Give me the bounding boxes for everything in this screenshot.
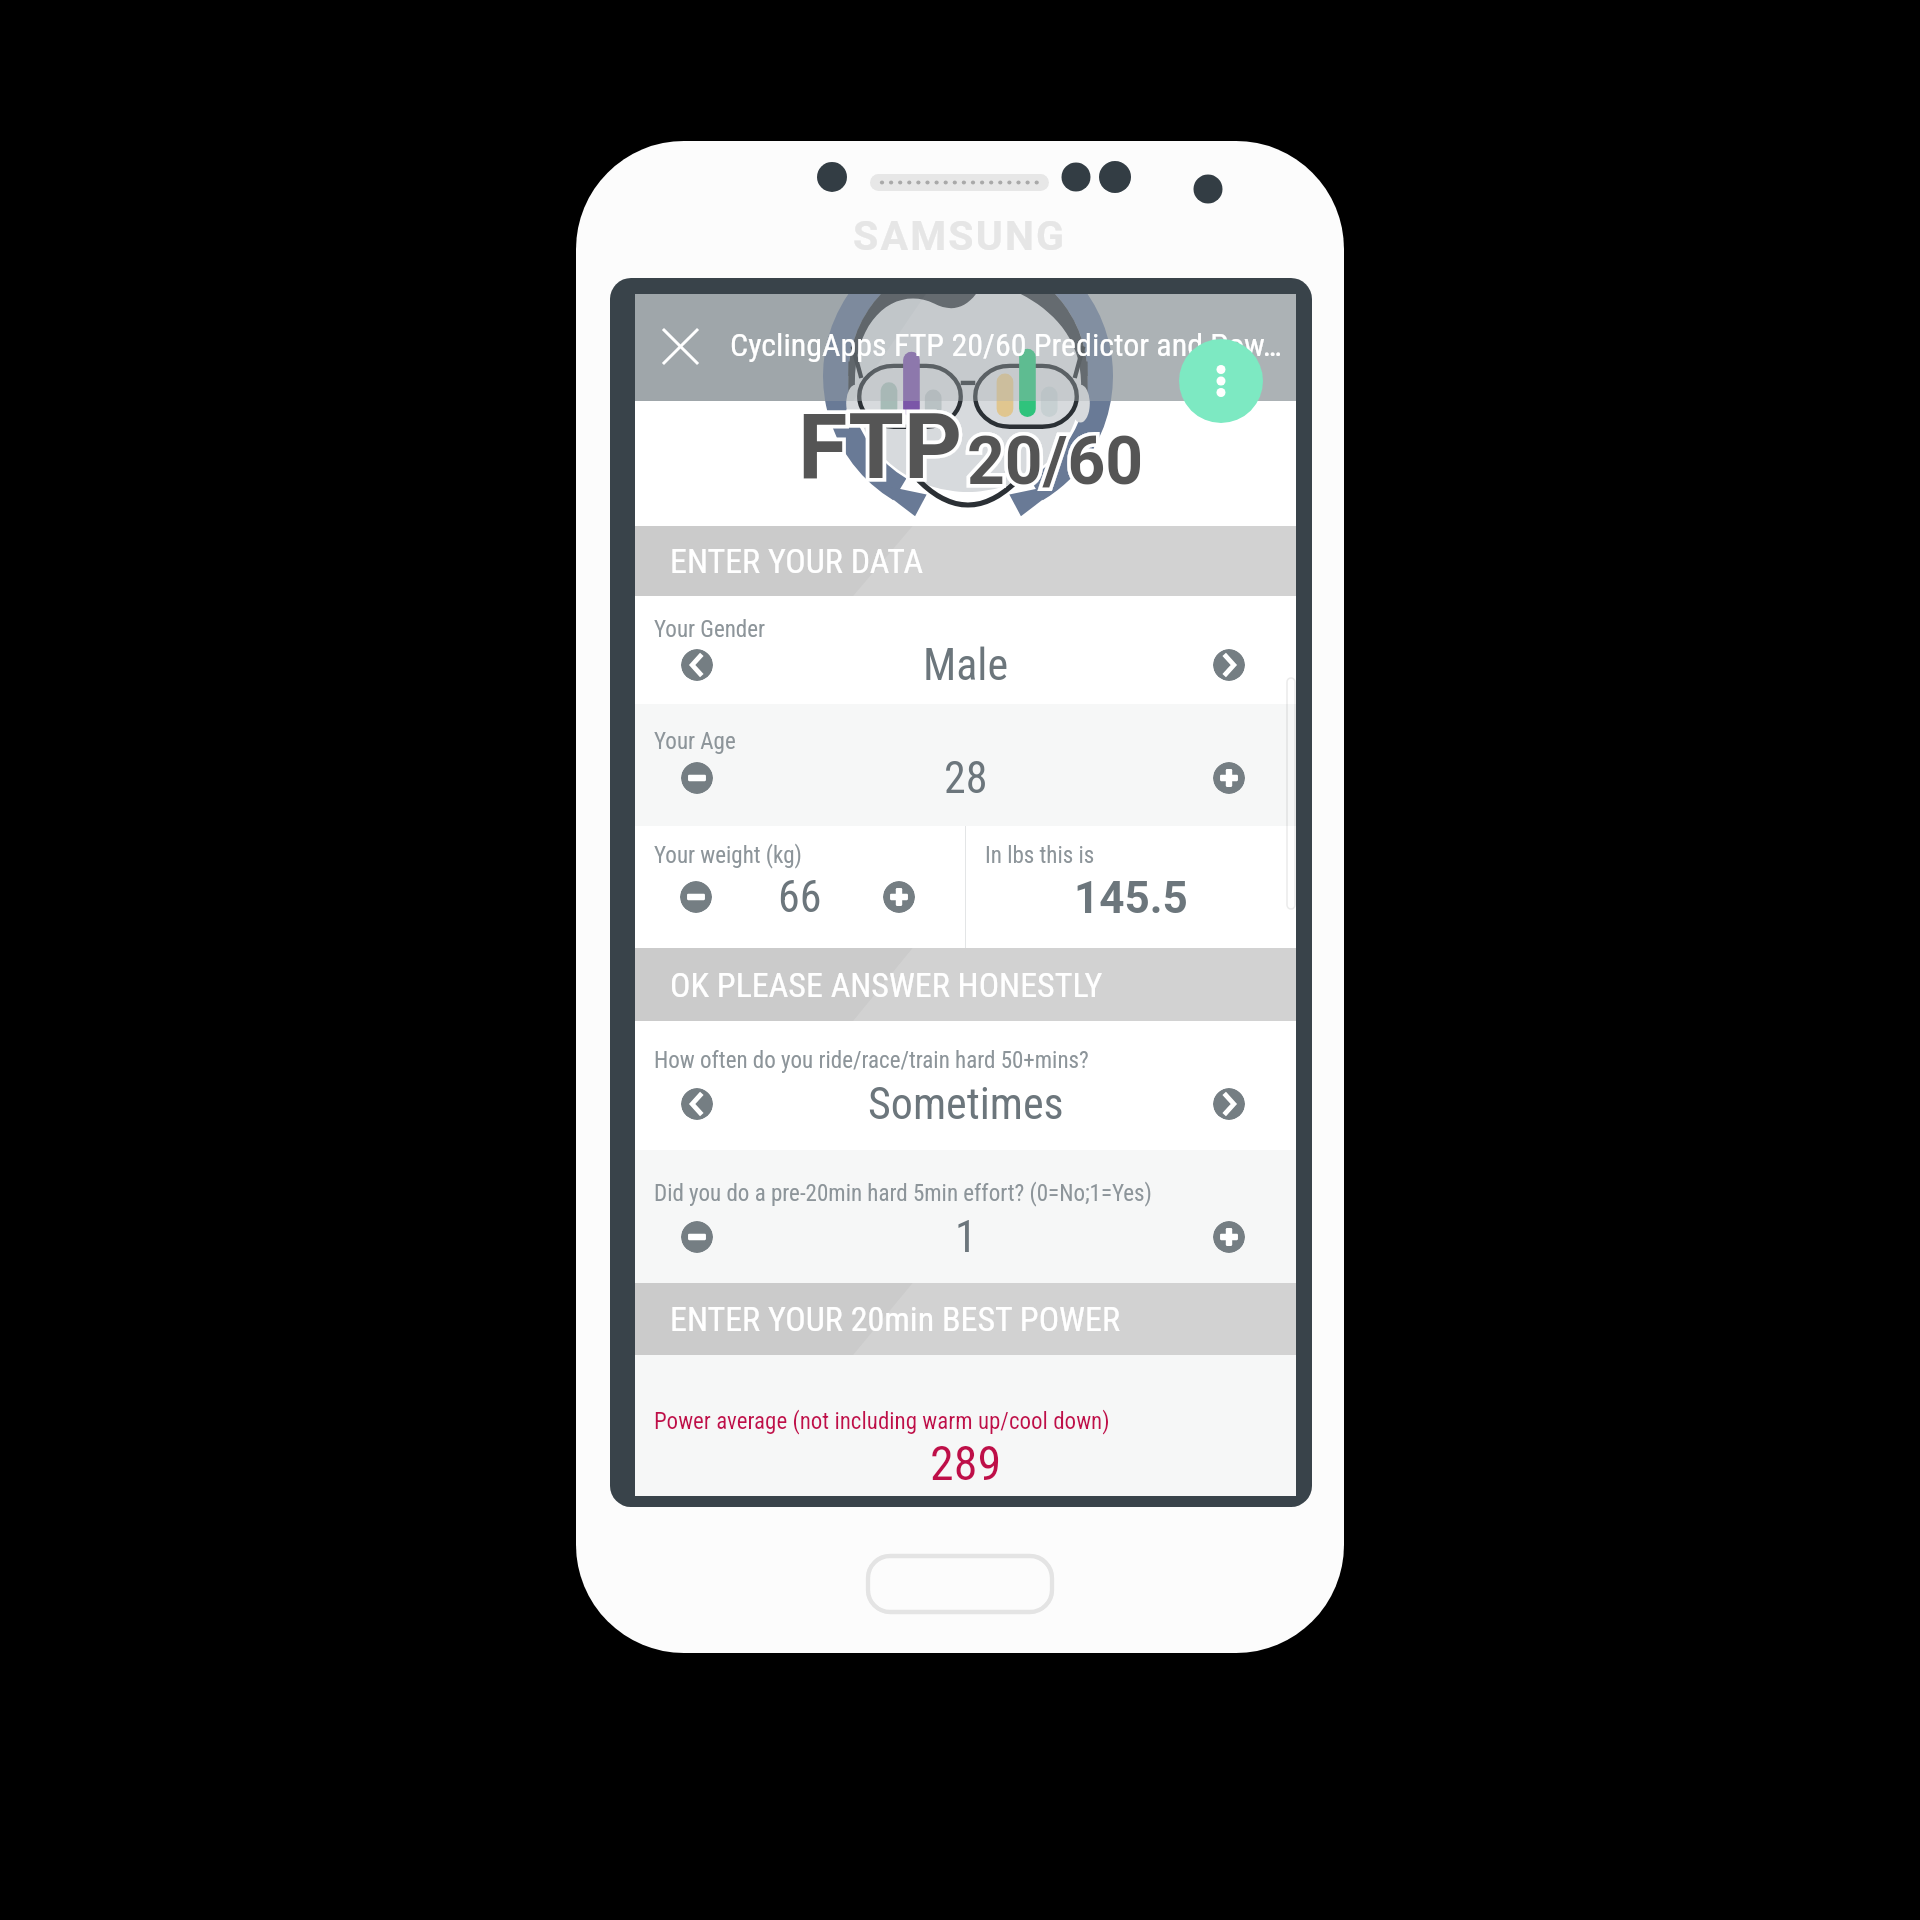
staticText: 289 <box>930 1435 1002 1491</box>
button[interactable]: Next <box>1213 649 1245 681</box>
staticText: 20/60 <box>967 423 1144 500</box>
staticText: 1 <box>955 1211 977 1263</box>
staticText: ENTER YOUR 20min BEST POWER <box>670 1299 1120 1339</box>
staticText: Your Age <box>654 728 736 755</box>
button[interactable]: Did you do a pre-20min hard 5min effort?… <box>635 1150 1296 1283</box>
button[interactable]: Decrease <box>681 762 713 794</box>
staticText: OK PLEASE ANSWER HONESTLY <box>670 965 1103 1005</box>
button[interactable]: Your weight (kg) <box>635 826 965 948</box>
button[interactable]: More options <box>1179 339 1263 423</box>
button[interactable]: Increase <box>1213 762 1245 794</box>
staticText: How often do you ride/race/train hard 50… <box>654 1047 1089 1074</box>
button[interactable]: Power average (not including warm up/coo… <box>635 1355 1296 1496</box>
staticText: 28 <box>944 752 988 804</box>
staticText: Power average (not including warm up/coo… <box>654 1408 1110 1435</box>
button[interactable]: Decrease <box>681 1221 713 1253</box>
staticText: ENTER YOUR DATA <box>670 541 924 581</box>
staticText: 66 <box>778 871 822 923</box>
staticText: Your Gender <box>654 616 766 643</box>
button[interactable]: Previous <box>681 649 713 681</box>
button[interactable]: Your Gender <box>635 596 1296 704</box>
staticText: 20/60 <box>967 423 1144 500</box>
staticText: Your weight (kg) <box>654 842 802 869</box>
staticText: 145.5 <box>1074 872 1188 922</box>
staticText: FTP <box>798 395 963 500</box>
button[interactable]: Increase <box>1213 1221 1245 1253</box>
staticText: Did you do a pre-20min hard 5min effort?… <box>654 1180 1152 1207</box>
button[interactable]: Your Age <box>635 704 1296 826</box>
button[interactable]: How often do you ride/race/train hard 50… <box>635 1021 1296 1150</box>
button[interactable]: Increase weight <box>883 881 915 913</box>
button[interactable]: Decrease weight <box>680 881 712 913</box>
staticText: Male <box>923 639 1009 691</box>
staticText: FTP <box>798 395 963 500</box>
button[interactable]: Previous <box>681 1088 713 1120</box>
button[interactable]: Close <box>648 314 712 378</box>
staticText: In lbs this is <box>985 842 1095 869</box>
staticText: CyclingApps FTP 20/60 Predictor and Pow… <box>730 326 1282 364</box>
staticText: Sometimes <box>868 1078 1064 1130</box>
staticText: SAMSUNG <box>853 212 1067 260</box>
button[interactable]: Next <box>1213 1088 1245 1120</box>
